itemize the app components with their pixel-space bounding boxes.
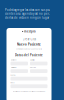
button[interactable]: Apellido (30, 59, 47, 65)
staticText: Correo (30, 67, 36, 68)
staticText: Nombre (10, 59, 16, 61)
staticText: Completa los datos para agendar la cita (16, 48, 42, 50)
button[interactable]: Correo (30, 67, 47, 73)
staticText: Hora (10, 82, 14, 84)
button[interactable]: Nombre (10, 59, 28, 65)
staticText: cientes a su agenda y así no per- (5, 12, 50, 15)
staticText: Apellido (30, 59, 35, 61)
staticText: Teléfono (10, 67, 16, 68)
staticText: Fecha (10, 74, 15, 76)
button[interactable]: Teléfono (10, 67, 28, 73)
staticText: medpro (24, 30, 36, 33)
staticText: derlas de vista en ningún lugar (5, 16, 49, 19)
button[interactable]: Fecha (10, 74, 47, 81)
button[interactable]: Hora (10, 82, 47, 88)
staticText: Datos del Paciente (15, 53, 43, 57)
staticText: Nuevo Paciente (17, 43, 41, 46)
staticText: Al continuar aceptas los Términos y Cond… (12, 91, 45, 92)
staticText: Crear Cita (22, 37, 35, 41)
staticText: Podrá agregar las citas con sus pa- (5, 8, 50, 12)
